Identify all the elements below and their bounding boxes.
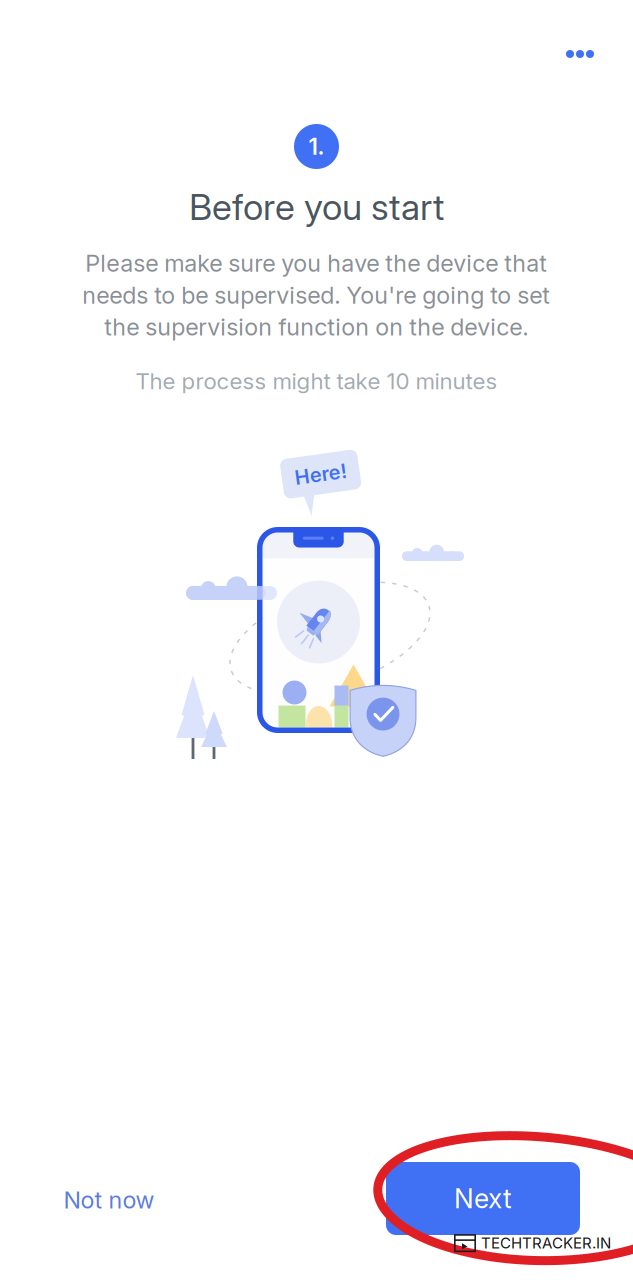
staticText: TECHTRACKER.IN (481, 1234, 611, 1252)
button[interactable]: Not now (44, 1172, 174, 1228)
staticText: Here! (296, 462, 348, 486)
staticText: Please make sure you have the device tha… (82, 249, 550, 341)
button[interactable]: Next (386, 1162, 580, 1235)
staticText: Before you start (189, 185, 444, 229)
staticText: Not now (63, 1186, 154, 1214)
staticText: The process might take 10 minutes (135, 367, 497, 394)
staticText: 1. (308, 133, 324, 160)
staticText: Next (454, 1182, 512, 1215)
button[interactable]: More options (549, 30, 611, 78)
